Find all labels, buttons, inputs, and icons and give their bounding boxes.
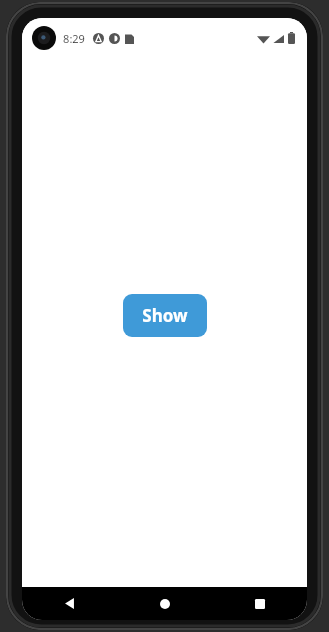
button[interactable]: Back <box>22 587 117 620</box>
button[interactable]: Home <box>117 587 212 620</box>
staticText: 8:29 <box>63 31 85 46</box>
button[interactable]: Recent apps <box>212 587 307 620</box>
staticText: Show <box>142 304 188 327</box>
button[interactable]: Show <box>123 294 207 337</box>
